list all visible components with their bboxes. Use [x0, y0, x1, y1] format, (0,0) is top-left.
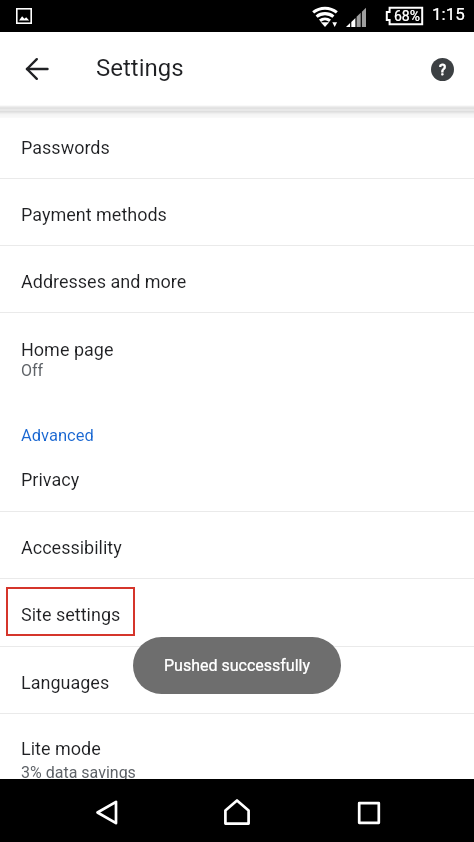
- button[interactable]: Home: [215, 790, 259, 834]
- staticText: Lite mode: [21, 738, 101, 759]
- staticText: 1:15: [432, 4, 465, 24]
- button[interactable]: Lite mode: [0, 714, 474, 779]
- button[interactable]: Home page: [0, 313, 474, 392]
- button[interactable]: Privacy: [0, 444, 474, 511]
- button[interactable]: Site settings: [0, 579, 474, 646]
- staticText: Languages: [21, 672, 110, 693]
- staticText: ?: [439, 61, 447, 79]
- staticText: Home page: [21, 339, 114, 360]
- staticText: Site settings: [21, 604, 121, 625]
- staticText: Payment methods: [21, 204, 167, 225]
- button[interactable]: Passwords: [0, 111, 474, 178]
- staticText: Settings: [96, 54, 184, 82]
- button[interactable]: Addresses and more: [0, 246, 474, 312]
- button[interactable]: Recent apps: [347, 791, 391, 835]
- button[interactable]: Accessibility: [0, 512, 474, 578]
- staticText: Passwords: [21, 137, 110, 158]
- button[interactable]: Back: [17, 49, 57, 89]
- staticText: 3% data savings: [21, 763, 136, 782]
- staticText: 68%: [394, 8, 420, 24]
- staticText: Advanced: [21, 426, 94, 445]
- button[interactable]: Payment methods: [0, 179, 474, 245]
- button[interactable]: Help: [422, 49, 462, 89]
- staticText: Accessibility: [21, 537, 122, 558]
- staticText: Pushed successfully: [164, 656, 311, 675]
- button[interactable]: Languages: [0, 647, 474, 713]
- staticText: Off: [21, 361, 44, 380]
- button[interactable]: Back: [85, 790, 129, 834]
- staticText: Addresses and more: [21, 271, 187, 292]
- staticText: Privacy: [21, 469, 80, 490]
